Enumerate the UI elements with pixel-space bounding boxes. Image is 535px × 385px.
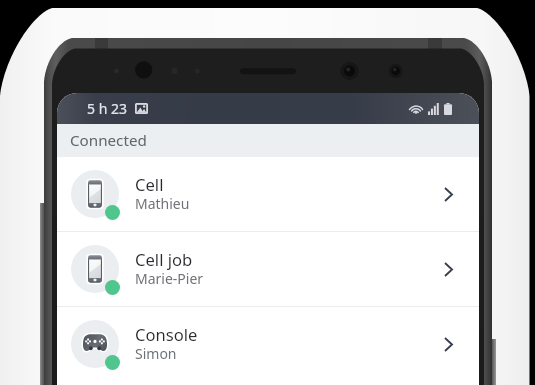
staticText: Console	[135, 323, 198, 346]
staticText: 5 h 23	[87, 99, 127, 118]
staticText: Marie-Pier	[135, 269, 204, 288]
staticText: Mathieu	[135, 194, 190, 213]
staticText: Cell job	[135, 248, 193, 271]
staticText: Simon	[135, 344, 177, 363]
staticText: Connected	[70, 130, 147, 151]
button[interactable]: Cell job	[57, 232, 479, 306]
staticText: Cell	[135, 173, 164, 196]
button[interactable]: Cell	[57, 157, 479, 231]
button[interactable]: Console	[57, 307, 479, 381]
